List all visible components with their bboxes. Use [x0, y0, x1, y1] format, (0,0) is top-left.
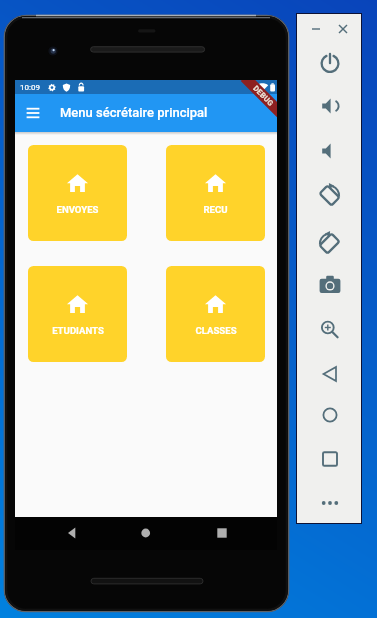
staticText: 10:09: [20, 83, 40, 92]
button[interactable]: More: [317, 490, 343, 516]
button[interactable]: Take screenshot: [317, 272, 343, 298]
staticText: CLASSES: [195, 325, 237, 336]
button[interactable]: RECU: [166, 145, 265, 241]
button[interactable]: Zoom: [317, 317, 343, 343]
button[interactable]: Power: [317, 50, 343, 76]
staticText: ETUDIANTS: [52, 325, 104, 336]
button[interactable]: Home: [116, 517, 176, 550]
staticText: ENVOYES: [56, 204, 99, 215]
button[interactable]: Home: [317, 402, 343, 428]
button[interactable]: Overview: [317, 446, 343, 472]
button[interactable]: Close: [330, 16, 356, 42]
button[interactable]: Back: [54, 517, 114, 550]
button[interactable]: Rotate clockwise: [317, 230, 343, 256]
button[interactable]: ENVOYES: [28, 145, 127, 241]
staticText: DEBUG: [251, 84, 275, 108]
button[interactable]: Open navigation menu: [22, 102, 44, 124]
button[interactable]: Recent apps: [192, 517, 252, 550]
button[interactable]: CLASSES: [166, 266, 265, 362]
button[interactable]: Rotate counterclockwise: [317, 182, 343, 208]
button[interactable]: Volume down: [317, 138, 343, 164]
button[interactable]: Volume up: [317, 93, 343, 119]
button[interactable]: ETUDIANTS: [28, 266, 127, 362]
staticText: Menu sécrétaire principal: [60, 105, 208, 120]
button[interactable]: Minimize: [303, 16, 329, 42]
button[interactable]: Back: [317, 361, 343, 387]
staticText: RECU: [203, 204, 228, 215]
